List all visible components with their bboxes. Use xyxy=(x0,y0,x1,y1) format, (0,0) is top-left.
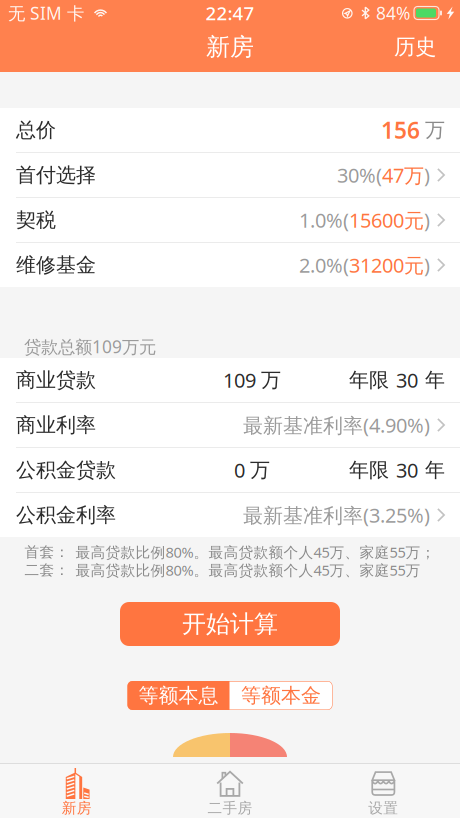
staticText: 设置 xyxy=(368,799,398,817)
staticText: 新房 xyxy=(62,799,92,817)
button[interactable]: 等额本息 xyxy=(127,681,229,710)
staticText: 109 xyxy=(223,367,256,393)
staticText: 年 xyxy=(425,458,445,482)
button[interactable]: 等额本金 xyxy=(229,681,332,710)
staticText: 最高贷款比例80%。最高贷款额个人45万、家庭55万 xyxy=(75,560,420,580)
staticText: 万 xyxy=(261,368,281,392)
staticText: 22:47 xyxy=(205,1,254,25)
staticText: 47万 xyxy=(382,162,424,188)
button[interactable]: 首付选择 xyxy=(0,153,460,197)
staticText: 新房 xyxy=(206,32,254,62)
button[interactable]: 契税 xyxy=(0,198,460,242)
staticText: ) xyxy=(424,252,430,278)
staticText: 156 xyxy=(381,115,420,145)
staticText: 30 xyxy=(396,457,418,483)
staticText: 15600元 xyxy=(349,207,424,233)
staticText: 年限 xyxy=(349,368,389,392)
staticText: 契税 xyxy=(16,208,56,232)
staticText: ) xyxy=(424,162,430,188)
staticText: 二套： xyxy=(24,561,69,579)
button[interactable]: 总价 xyxy=(0,108,460,152)
staticText: ) xyxy=(424,207,430,233)
staticText: 等额本息 xyxy=(138,683,218,708)
button[interactable]: 维修基金 xyxy=(0,243,460,287)
staticText: 商业利率 xyxy=(16,413,96,437)
staticText: 万 xyxy=(250,458,270,482)
staticText: 首套： xyxy=(24,543,69,561)
staticText: 84% xyxy=(376,1,410,24)
staticText: 开始计算 xyxy=(182,609,278,639)
staticText: 30% xyxy=(337,162,376,188)
staticText: 最新基准利率(3.25%) xyxy=(243,502,430,528)
staticText: 维修基金 xyxy=(16,253,96,277)
staticText: 贷款总额109万元 xyxy=(24,335,156,358)
button[interactable]: 商业利率 xyxy=(0,403,460,447)
staticText: 万 xyxy=(425,118,445,142)
staticText: ( xyxy=(376,162,382,188)
staticText: ( xyxy=(343,207,349,233)
staticText: 年 xyxy=(425,368,445,392)
staticText: 历史 xyxy=(394,34,436,60)
staticText: 年限 xyxy=(349,458,389,482)
button[interactable]: 历史 xyxy=(376,26,460,72)
staticText: 公积金利率 xyxy=(16,503,116,527)
staticText: 1.0% xyxy=(299,207,343,233)
staticText: 等额本金 xyxy=(241,683,321,708)
staticText: 0 xyxy=(234,457,245,483)
button[interactable]: 开始计算 xyxy=(120,602,340,646)
button[interactable]: 二手房 xyxy=(153,764,307,818)
button[interactable]: 商业贷款 xyxy=(0,358,460,402)
button[interactable]: 公积金利率 xyxy=(0,493,460,537)
staticText: 无 SIM 卡 xyxy=(8,1,84,24)
staticText: 商业贷款 xyxy=(16,368,96,392)
staticText: 公积金贷款 xyxy=(16,458,116,482)
staticText: 首付选择 xyxy=(16,163,96,187)
staticText: ( xyxy=(343,252,349,278)
staticText: 2.0% xyxy=(299,252,343,278)
staticText: 最新基准利率(4.90%) xyxy=(243,412,430,438)
button[interactable]: 新房 xyxy=(0,764,153,818)
staticText: 最高贷款比例80%。最高贷款额个人45万、家庭55万； xyxy=(75,542,435,562)
staticText: 二手房 xyxy=(207,799,252,817)
staticText: 30 xyxy=(396,367,418,393)
button[interactable]: 设置 xyxy=(307,764,460,818)
staticText: 31200元 xyxy=(349,252,424,278)
button[interactable]: 公积金贷款 xyxy=(0,448,460,492)
staticText: 总价 xyxy=(16,118,56,142)
